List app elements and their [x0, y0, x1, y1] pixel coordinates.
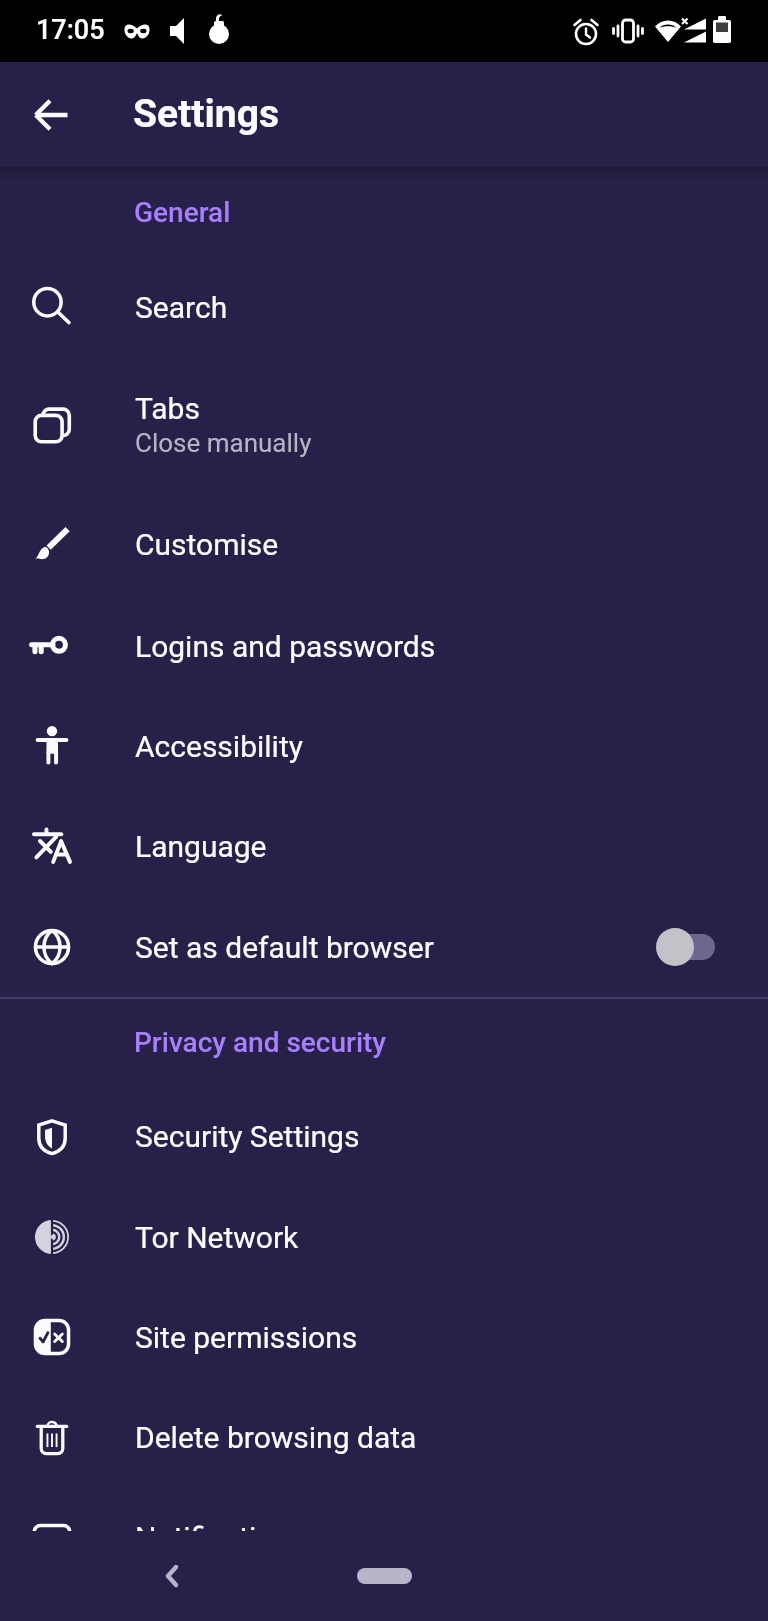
staticText: General [134, 196, 231, 229]
button[interactable]: Navigate up [8, 71, 96, 159]
staticText: Tor Network [135, 1220, 299, 1255]
button[interactable]: Language [0, 796, 768, 897]
staticText: Delete browsing data [135, 1420, 417, 1455]
staticText: Language [135, 829, 267, 864]
button[interactable]: Delete browsing data [0, 1387, 768, 1487]
staticText: Set as default browser [135, 930, 434, 965]
staticText: Customise [135, 527, 279, 562]
staticText: Close manually [135, 428, 312, 458]
button[interactable]: Site permissions [0, 1287, 768, 1387]
staticText: Notifications [135, 1520, 306, 1531]
button[interactable]: Tor Network [0, 1187, 768, 1287]
button[interactable]: Accessibility [0, 696, 768, 796]
staticText: Security Settings [135, 1119, 360, 1154]
button[interactable]: Security Settings [0, 1086, 768, 1187]
staticText: Settings [133, 91, 279, 137]
staticText: Logins and passwords [135, 629, 436, 664]
button[interactable]: Logins and passwords [0, 596, 768, 696]
staticText: Site permissions [135, 1320, 358, 1355]
button[interactable]: Back [132, 1538, 208, 1614]
staticText: 17:05 [36, 14, 105, 46]
button[interactable]: Set as default browser [0, 897, 768, 997]
staticText: Accessibility [135, 729, 303, 764]
staticText: Search [135, 290, 228, 325]
button[interactable]: Tabs [0, 357, 768, 492]
button[interactable]: Notifications [0, 1487, 768, 1531]
staticText: Tabs [135, 391, 200, 426]
button[interactable]: Customise [0, 492, 768, 596]
staticText: Privacy and security [134, 1026, 387, 1059]
button[interactable]: Home [357, 1568, 412, 1584]
button[interactable]: Set as default browser, off [633, 897, 768, 997]
button[interactable]: Search [0, 257, 768, 357]
